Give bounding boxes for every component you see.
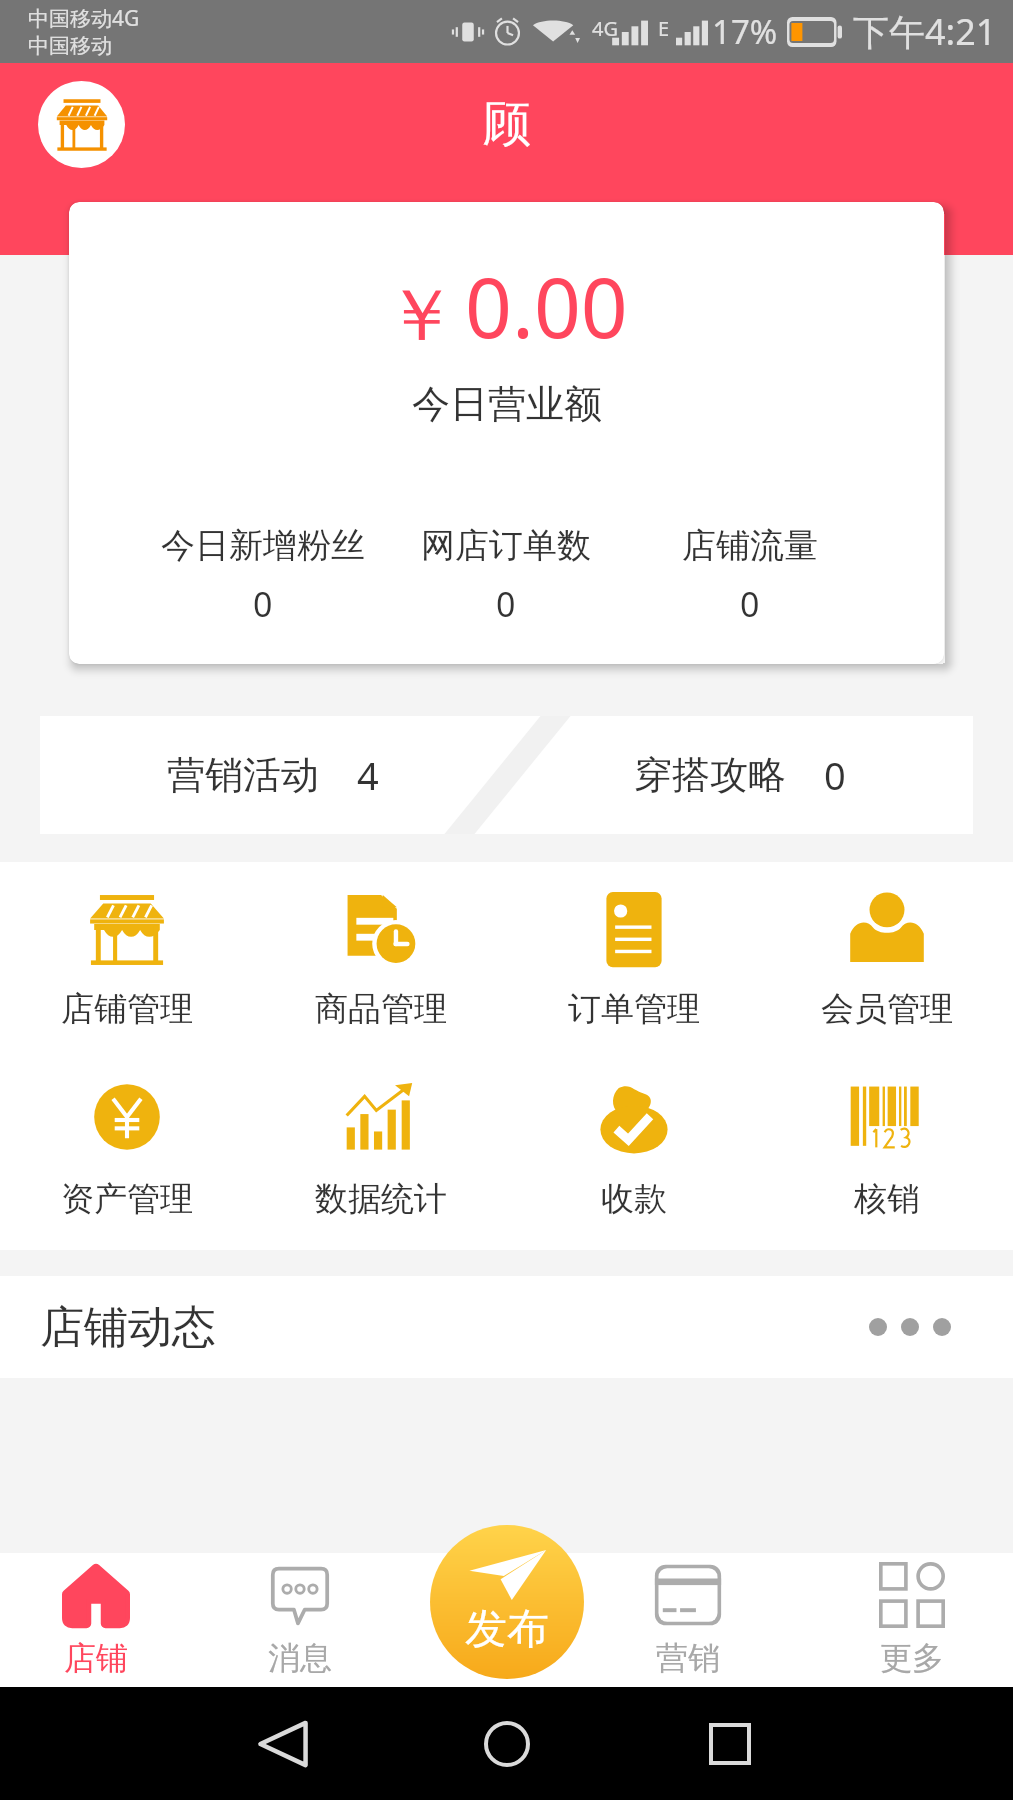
button[interactable]: 消息 [199,1553,401,1687]
button[interactable]: 网店订单数 [384,524,628,627]
button[interactable]: 最近任务 [702,1716,758,1772]
staticText: 17% [712,9,778,54]
staticText: ￥ [385,271,457,362]
staticText: 商品管理 [315,988,447,1030]
button[interactable]: 返回 [255,1716,311,1772]
staticText: 0 [824,749,846,801]
staticText: 0 [496,581,516,627]
staticText: 店铺 [64,1638,128,1678]
staticText: 今日营业额 [412,380,602,428]
button[interactable]: 穿搭攻略 [506,716,973,834]
button[interactable]: 商品管理 [254,892,507,1030]
staticText: 今日新增粉丝 [161,524,365,567]
staticText: 店铺流量 [682,524,818,567]
button[interactable]: 店铺流量 [628,524,872,627]
staticText: 订单管理 [568,988,700,1030]
button[interactable]: 会员管理 [760,892,1013,1030]
staticText: 顾 [483,94,531,154]
button[interactable]: 营销活动 [40,716,506,834]
staticText: 中国移动 [28,33,112,59]
staticText: 核销 [854,1178,920,1220]
button[interactable]: 店铺 [38,81,125,168]
button[interactable]: 收款 [507,1082,760,1220]
button[interactable]: 更多 [869,1318,951,1336]
staticText: E [658,15,670,42]
button[interactable]: 核销 [760,1082,1013,1220]
button[interactable]: 今日新增粉丝 [141,524,384,627]
button[interactable]: 资产管理 [0,1082,254,1220]
staticText: 发布 [465,1603,549,1656]
staticText: 网店订单数 [421,524,591,567]
button[interactable]: 营销 [586,1553,789,1687]
staticText: 消息 [268,1638,332,1678]
staticText: 0.00 [465,250,628,362]
button[interactable]: 订单管理 [507,892,760,1030]
staticText: 0 [253,581,273,627]
staticText: 营销 [656,1638,720,1678]
staticText: 营销活动 [167,751,319,799]
button[interactable]: 更多 [810,1553,1013,1687]
staticText: 4G [592,15,618,42]
staticText: 资产管理 [61,1178,193,1220]
button[interactable]: 发布 [430,1525,584,1679]
staticText: 中国移动4G [28,4,140,33]
staticText: 0 [740,581,760,627]
staticText: 数据统计 [315,1178,447,1220]
staticText: 下午4:21 [853,7,997,56]
staticText: 穿搭攻略 [634,751,786,799]
staticText: 店铺动态 [40,1300,216,1355]
button[interactable]: 主页 [479,1716,535,1772]
staticText: 会员管理 [821,988,953,1030]
button[interactable]: 店铺管理 [0,892,254,1030]
staticText: 店铺管理 [61,988,193,1030]
staticText: 更多 [880,1638,944,1678]
button[interactable]: 店铺 [0,1553,197,1687]
button[interactable]: 数据统计 [254,1082,507,1220]
staticText: 4 [357,749,379,801]
staticText: 收款 [601,1178,667,1220]
